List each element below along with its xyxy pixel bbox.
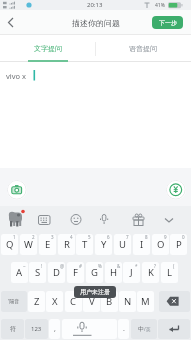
button[interactable]: Y	[95, 234, 112, 255]
staticText: 中	[138, 325, 144, 333]
staticText: X	[52, 295, 58, 308]
staticText: 语音提问	[129, 44, 157, 53]
button[interactable]: K	[142, 262, 159, 283]
staticText: J	[130, 266, 133, 279]
staticText: 1	[13, 234, 16, 240]
staticText: A	[16, 266, 23, 279]
staticText: '隔音	[8, 298, 20, 305]
staticText: @	[60, 263, 65, 269]
staticText: 用户未注册	[80, 288, 110, 296]
staticText: Q	[6, 238, 14, 251]
staticText: C	[70, 295, 77, 308]
staticText: 描述你的问题	[72, 18, 120, 28]
button[interactable]: O	[152, 234, 169, 255]
staticText: I	[140, 238, 144, 251]
staticText: #	[79, 263, 82, 269]
button[interactable]: S	[29, 262, 46, 283]
button[interactable]: B	[101, 291, 118, 312]
staticText: G	[91, 266, 98, 279]
staticText: H	[110, 266, 118, 279]
staticText: D	[53, 266, 60, 279]
button[interactable]	[0, 10, 20, 35]
staticText: 0	[182, 234, 185, 240]
staticText: Y	[101, 238, 107, 251]
button[interactable]: R	[58, 234, 75, 255]
staticText: 文字提问	[34, 44, 62, 53]
staticText: 8	[145, 234, 148, 240]
button[interactable]: M	[137, 291, 154, 312]
staticText: L	[167, 266, 172, 279]
button[interactable]: 下一步	[152, 16, 183, 29]
button[interactable]: D	[48, 262, 65, 283]
button[interactable]: Q	[1, 234, 18, 255]
button[interactable]: G	[86, 262, 103, 283]
staticText: N	[124, 295, 132, 308]
staticText: 7	[126, 234, 129, 240]
staticText: Z	[34, 295, 40, 308]
button[interactable]: W	[20, 234, 37, 255]
staticText: 符	[10, 325, 16, 333]
button[interactable]: T	[76, 234, 93, 255]
staticText: ~	[23, 263, 26, 269]
button[interactable]: ,	[49, 319, 60, 339]
button[interactable]: F	[67, 262, 84, 283]
staticText: /英	[144, 326, 151, 332]
staticText: T	[82, 238, 88, 251]
staticText: R	[64, 238, 70, 251]
staticText: S	[35, 266, 41, 279]
staticText: 4	[70, 234, 73, 240]
staticText: F	[73, 266, 78, 279]
button[interactable]: J	[123, 262, 140, 283]
staticText: %	[98, 263, 102, 269]
button[interactable]: I	[133, 234, 150, 255]
staticText: ?	[154, 263, 156, 269]
button[interactable]	[7, 180, 27, 200]
staticText: ,	[54, 324, 56, 334]
button[interactable]: H	[105, 262, 122, 283]
button[interactable]: 符	[1, 319, 24, 339]
staticText: 123	[31, 325, 42, 333]
button[interactable]: 中	[131, 319, 157, 339]
staticText: W	[24, 238, 33, 251]
button[interactable]: 文字提问	[0, 35, 95, 62]
staticText: 6	[107, 234, 110, 240]
button[interactable]: '隔音	[1, 291, 27, 312]
staticText: 9	[164, 234, 167, 240]
button[interactable]: .	[118, 319, 129, 339]
staticText: 3	[51, 234, 54, 240]
staticText: M	[141, 295, 150, 308]
button[interactable]: 123	[25, 319, 48, 339]
button[interactable]	[166, 180, 186, 200]
staticText: P	[176, 238, 182, 251]
staticText: 41%	[155, 2, 165, 9]
button[interactable]: V	[83, 291, 100, 312]
staticText: B	[106, 295, 113, 308]
staticText: vivo x	[6, 71, 27, 81]
staticText: *	[135, 263, 138, 269]
staticText: V	[89, 295, 95, 308]
staticText: 20:13	[87, 1, 103, 9]
button[interactable]: 语音提问	[95, 35, 191, 62]
button[interactable]: N	[119, 291, 136, 312]
button[interactable]: A	[11, 262, 28, 283]
button[interactable]	[158, 319, 190, 339]
button[interactable]	[159, 291, 190, 312]
button[interactable]: E	[39, 234, 56, 255]
button[interactable]: Z	[28, 291, 45, 312]
staticText: .	[123, 324, 125, 334]
button[interactable]: U	[114, 234, 131, 255]
staticText: K	[148, 266, 154, 279]
button[interactable]: X	[46, 291, 63, 312]
staticText: &	[117, 263, 121, 269]
button[interactable]: L	[161, 262, 178, 283]
staticText: O	[157, 238, 165, 251]
button[interactable]: C	[65, 291, 82, 312]
staticText: E	[45, 238, 51, 251]
staticText: 5	[88, 234, 91, 240]
button[interactable]	[62, 319, 117, 339]
staticText: !	[41, 263, 43, 269]
staticText: 下一步	[159, 19, 177, 27]
button[interactable]: P	[170, 234, 187, 255]
staticText: 2	[32, 234, 35, 240]
staticText: U	[119, 238, 126, 251]
